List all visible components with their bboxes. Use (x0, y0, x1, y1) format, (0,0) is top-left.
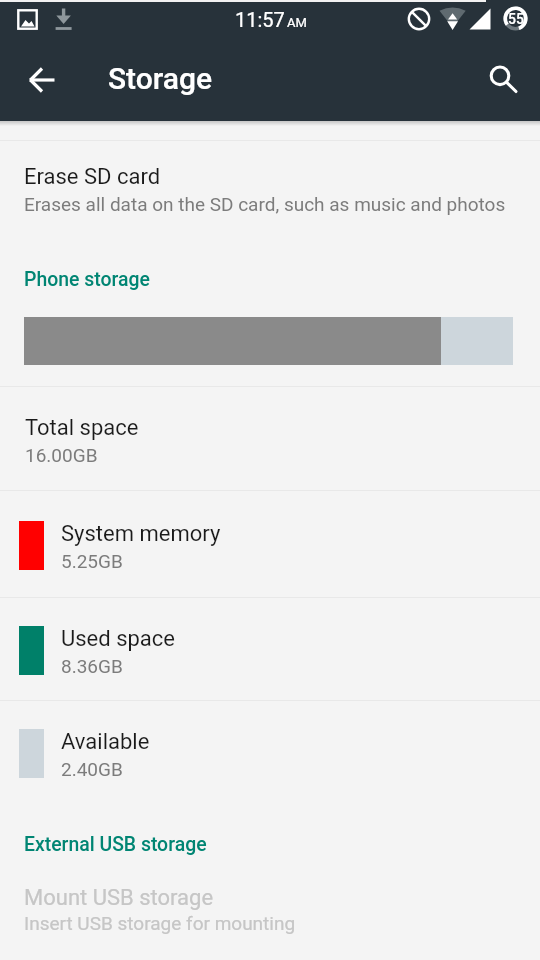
staticText: 8.36GB (61, 655, 123, 677)
staticText: Storage (108, 61, 213, 96)
staticText: Used space (61, 626, 176, 652)
staticText: 5.25GB (61, 550, 123, 572)
staticText: Phone storage (24, 268, 150, 291)
staticText: 16.00GB (25, 444, 98, 466)
staticText: 11:57 (235, 8, 285, 31)
button[interactable]: Erase SD card (0, 141, 540, 247)
staticText: AM (287, 15, 307, 30)
staticText: Available (61, 729, 150, 755)
staticText: 2.40GB (61, 758, 123, 780)
button[interactable]: Search (478, 54, 530, 106)
staticText: Erase SD card (24, 164, 161, 190)
button[interactable]: Total space (0, 387, 540, 490)
staticText: Erases all data on the SD card, such as … (24, 193, 506, 215)
staticText: Total space (25, 415, 139, 441)
staticText: External USB storage (24, 833, 207, 856)
button[interactable]: Used space (0, 598, 540, 700)
button[interactable]: Mount USB storage (0, 885, 540, 934)
staticText: Mount USB storage (24, 885, 214, 911)
button[interactable]: System memory (0, 491, 540, 597)
button[interactable]: Available (0, 701, 540, 803)
button[interactable]: Navigate up (16, 54, 68, 106)
staticText: Insert USB storage for mounting (24, 912, 296, 934)
staticText: System memory (61, 521, 221, 547)
staticText: 55 (508, 11, 524, 27)
